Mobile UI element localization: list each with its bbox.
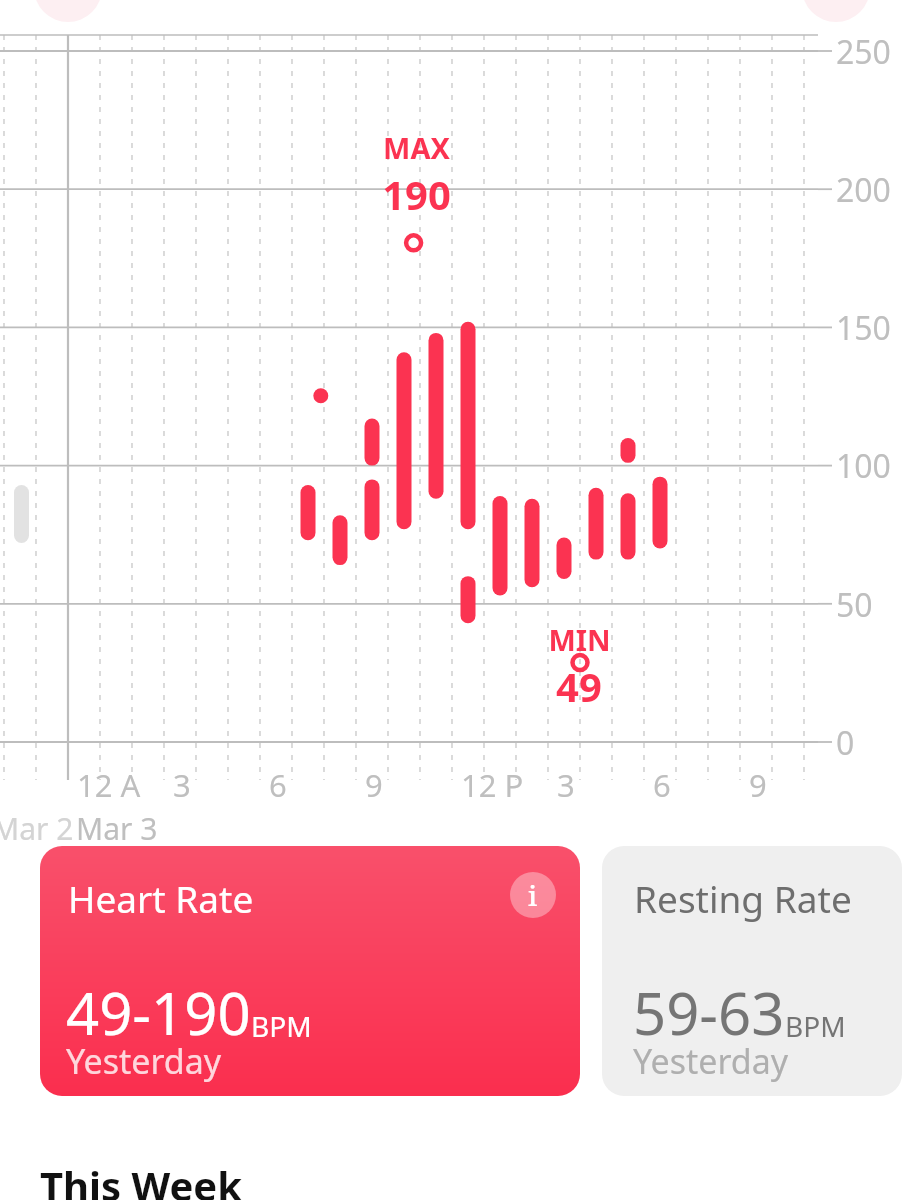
staticText: This Week	[40, 1158, 242, 1200]
staticText: Resting Rate	[634, 873, 852, 923]
button[interactable]: Heart Rate	[40, 846, 580, 1096]
staticText: 250	[836, 30, 891, 74]
staticText: 100	[836, 444, 891, 488]
staticText: 49-190	[66, 973, 251, 1052]
staticText: Yesterday	[66, 1038, 222, 1084]
staticText: 12 P	[461, 764, 524, 806]
staticText: 6	[269, 764, 287, 806]
staticText: Yesterday	[633, 1038, 789, 1084]
staticText: 190	[382, 167, 451, 221]
staticText: 50	[836, 583, 873, 627]
staticText: BPM	[251, 1007, 312, 1045]
staticText: 9	[365, 764, 383, 806]
staticText: 9	[749, 764, 767, 806]
staticText: 3	[173, 764, 191, 806]
staticText: 3	[557, 764, 575, 806]
staticText: 150	[836, 306, 891, 350]
staticText: MAX	[383, 128, 450, 167]
button[interactable]: Resting Rate	[602, 846, 902, 1096]
staticText: 49	[556, 659, 602, 713]
staticText: Mar 3	[76, 808, 158, 849]
staticText: i	[528, 876, 538, 914]
staticText: 0	[836, 721, 855, 765]
button[interactable]: Info about Heart Rate	[510, 872, 556, 918]
staticText: 12 A	[77, 764, 141, 806]
staticText: 6	[653, 764, 671, 806]
staticText: Heart Rate	[68, 873, 254, 923]
staticText: MIN	[548, 620, 611, 659]
staticText: 200	[836, 168, 891, 212]
staticText: BPM	[785, 1007, 846, 1045]
staticText: Mar 2	[0, 808, 74, 849]
staticText: 59-63	[633, 973, 785, 1052]
